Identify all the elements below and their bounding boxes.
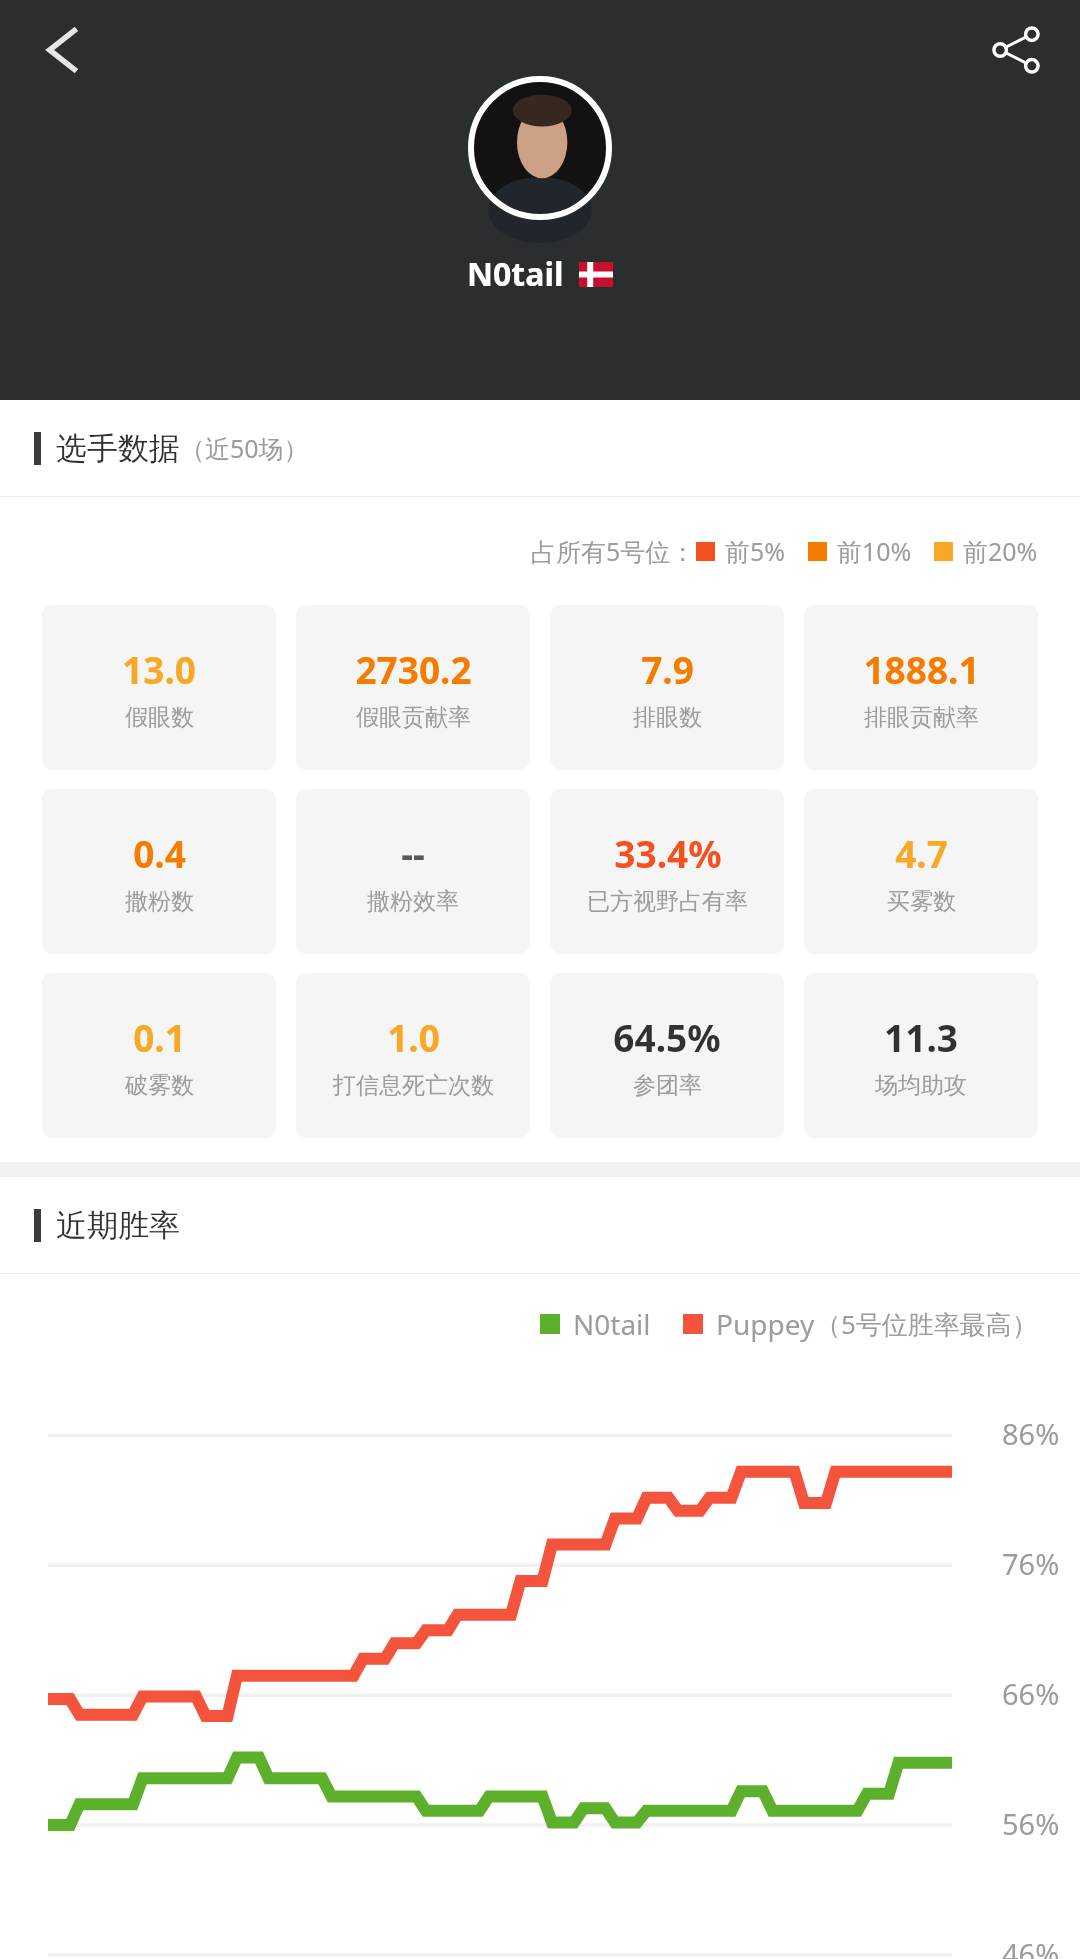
- staticText: N0tail: [573, 1305, 651, 1343]
- staticText: 0.4: [133, 828, 186, 878]
- staticText: 33.4%: [614, 828, 722, 878]
- staticText: 参团率: [633, 1071, 702, 1100]
- staticText: 76%: [1002, 1544, 1060, 1583]
- staticText: 2730.2: [355, 644, 472, 694]
- button[interactable]: 13.0: [42, 605, 276, 770]
- button[interactable]: --: [296, 789, 530, 954]
- staticText: 打信息死亡次数: [333, 1071, 494, 1100]
- button[interactable]: 33.4%: [550, 789, 784, 954]
- staticText: 4.7: [895, 828, 948, 878]
- staticText: 撒粉数: [125, 887, 194, 916]
- button[interactable]: 0.4: [42, 789, 276, 954]
- staticText: 场均助攻: [875, 1071, 967, 1100]
- staticText: Puppey: [716, 1305, 815, 1343]
- button[interactable]: 7.9: [550, 605, 784, 770]
- staticText: 86%: [1002, 1414, 1060, 1453]
- staticText: 选手数据: [56, 429, 180, 468]
- button[interactable]: 4.7: [804, 789, 1038, 954]
- staticText: --: [401, 828, 425, 878]
- button[interactable]: 0.1: [42, 973, 276, 1138]
- button[interactable]: 11.3: [804, 973, 1038, 1138]
- staticText: （近50场）: [180, 431, 309, 465]
- staticText: 假眼数: [125, 703, 194, 732]
- button[interactable]: Back: [18, 4, 110, 96]
- staticText: 46%: [1002, 1934, 1060, 1959]
- staticText: 近期胜率: [56, 1206, 180, 1245]
- staticText: 排眼数: [633, 703, 702, 732]
- staticText: 占所有5号位：: [531, 534, 696, 568]
- staticText: 前20%: [963, 534, 1038, 568]
- staticText: 已方视野占有率: [587, 887, 748, 916]
- staticText: 1.0: [387, 1012, 440, 1062]
- staticText: 64.5%: [613, 1012, 721, 1062]
- button[interactable]: 2730.2: [296, 605, 530, 770]
- staticText: 66%: [1002, 1674, 1060, 1713]
- staticText: N0tail: [467, 252, 564, 296]
- staticText: 撒粉效率: [367, 887, 459, 916]
- staticText: 0.1: [133, 1012, 186, 1062]
- button[interactable]: 1.0: [296, 973, 530, 1138]
- staticText: 买雾数: [887, 887, 956, 916]
- button[interactable]: 1888.1: [804, 605, 1038, 770]
- staticText: 排眼贡献率: [864, 703, 979, 732]
- button[interactable]: 64.5%: [550, 973, 784, 1138]
- staticText: 假眼贡献率: [356, 703, 471, 732]
- staticText: 前10%: [837, 534, 912, 568]
- staticText: 破雾数: [125, 1071, 194, 1100]
- staticText: 13.0: [122, 644, 196, 694]
- staticText: （5号位胜率最高）: [815, 1306, 1038, 1342]
- staticText: 11.3: [884, 1012, 958, 1062]
- staticText: 1888.1: [863, 644, 980, 694]
- button[interactable]: Share: [970, 4, 1062, 96]
- staticText: 7.9: [641, 644, 694, 694]
- staticText: 56%: [1002, 1804, 1060, 1843]
- staticText: 前5%: [725, 534, 786, 568]
